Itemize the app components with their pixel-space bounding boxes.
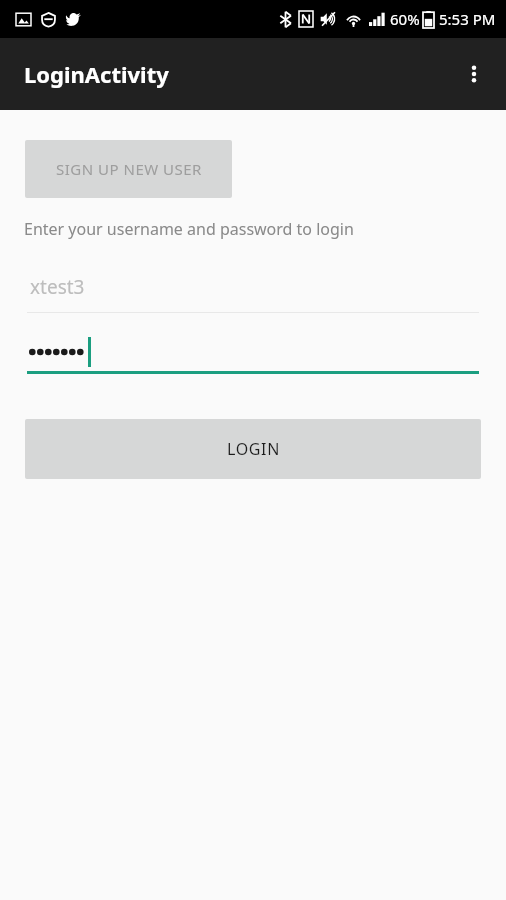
staticText: xtest3 xyxy=(30,274,85,300)
staticText: Enter your username and password to logi… xyxy=(24,218,354,240)
staticText: SIGN UP NEW USER xyxy=(56,159,202,179)
button[interactable]: SIGN UP NEW USER xyxy=(25,140,232,198)
staticText: 5:53 PM xyxy=(439,9,496,29)
staticText: 60% xyxy=(390,9,420,29)
button[interactable]: LOGIN xyxy=(25,419,481,479)
button[interactable]: xtest3 xyxy=(27,265,479,313)
staticText: LoginActivity xyxy=(24,59,169,89)
button[interactable] xyxy=(27,330,479,374)
staticText: LOGIN xyxy=(227,438,280,460)
button[interactable]: More options xyxy=(450,50,498,98)
